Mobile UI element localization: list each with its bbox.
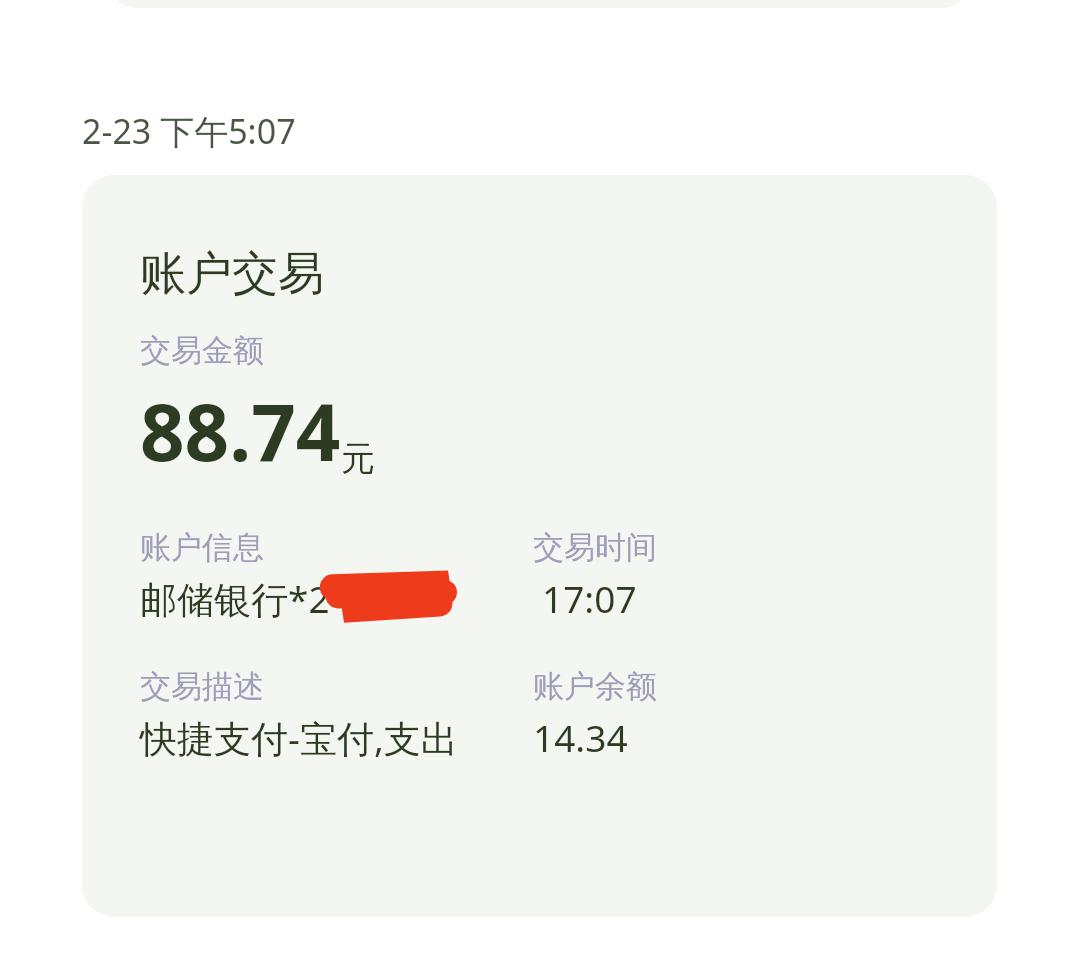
staticText: 账户信息 (140, 528, 264, 567)
staticText: 交易描述 (140, 667, 264, 706)
staticText: 17:07 (542, 573, 637, 623)
staticText: 邮储银行*2***0 (140, 573, 412, 624)
staticText: 元 (341, 437, 375, 480)
staticText: 账户余额 (533, 667, 657, 706)
staticText: 14.34 (533, 712, 628, 762)
staticText: 交易时间 (533, 528, 657, 567)
staticText: 交易金额 (140, 331, 264, 370)
staticText: 88.74 (140, 378, 341, 484)
staticText: 2-23 下午5:07 (82, 108, 296, 154)
button[interactable]: 账户交易 (82, 175, 997, 917)
other: Redacted account number (325, 565, 455, 627)
staticText: 账户交易 (140, 245, 324, 303)
staticText: 快捷支付-宝付,支出 (140, 712, 490, 763)
